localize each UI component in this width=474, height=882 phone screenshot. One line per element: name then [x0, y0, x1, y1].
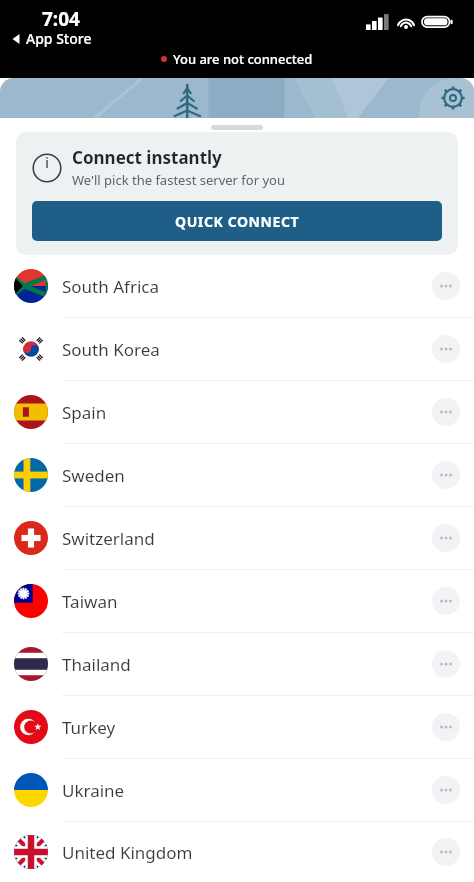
button[interactable]: Sweden: [0, 444, 474, 506]
staticText: Connect instantly: [72, 146, 222, 169]
button[interactable]: More options for Thailand: [432, 650, 460, 678]
staticText: Switzerland: [62, 527, 432, 550]
button[interactable]: Ukraine: [0, 759, 474, 821]
staticText: Thailand: [62, 653, 432, 676]
staticText: We'll pick the fastest server for you: [72, 171, 285, 189]
staticText: Ukraine: [62, 779, 432, 802]
button[interactable]: More options for Turkey: [432, 713, 460, 741]
button[interactable]: Spain: [0, 381, 474, 443]
button[interactable]: More options for Spain: [432, 398, 460, 426]
button[interactable]: Settings: [442, 87, 464, 109]
staticText: Sweden: [62, 464, 432, 487]
staticText: QUICK CONNECT: [175, 212, 300, 231]
button[interactable]: More options for Taiwan: [432, 587, 460, 615]
staticText: Spain: [62, 401, 432, 424]
button[interactable]: More options for Switzerland: [432, 524, 460, 552]
staticText: South Africa: [62, 275, 432, 298]
button[interactable]: Thailand: [0, 633, 474, 695]
staticText: App Store: [26, 29, 92, 48]
button[interactable]: South Africa: [0, 255, 474, 317]
button[interactable]: Switzerland: [0, 507, 474, 569]
button[interactable]: Turkey: [0, 696, 474, 758]
button[interactable]: United Kingdom: [0, 822, 474, 882]
staticText: i: [45, 152, 50, 172]
staticText: United Kingdom: [62, 841, 432, 864]
staticText: You are not connected: [173, 50, 313, 68]
button[interactable]: More options for Ukraine: [432, 776, 460, 804]
staticText: Taiwan: [62, 590, 432, 613]
button[interactable]: More options for Sweden: [432, 461, 460, 489]
staticText: 7:04: [42, 6, 80, 32]
button[interactable]: More options for United Kingdom: [432, 838, 460, 866]
staticText: Turkey: [62, 716, 432, 739]
button[interactable]: South Korea: [0, 318, 474, 380]
staticText: South Korea: [62, 338, 432, 361]
button[interactable]: More options for South Korea: [432, 335, 460, 363]
button[interactable]: Taiwan: [0, 570, 474, 632]
button[interactable]: QUICK CONNECT: [32, 201, 442, 241]
button[interactable]: More options for South Africa: [432, 272, 460, 300]
